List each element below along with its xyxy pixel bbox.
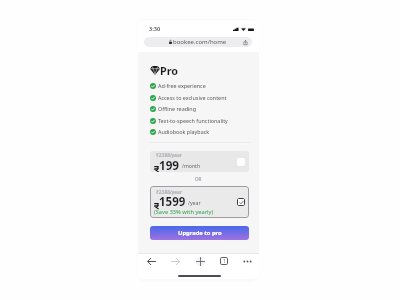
- staticText: Ad-free experience: [158, 82, 206, 89]
- staticText: 1: [223, 258, 226, 265]
- staticText: ₹2388/year: [156, 189, 182, 196]
- button[interactable]: Back: [145, 255, 157, 267]
- staticText: Text-to-speech functionality: [158, 117, 228, 124]
- button[interactable]: Upgrade to pro: [150, 226, 249, 240]
- button[interactable]: Forward: [169, 255, 181, 267]
- button[interactable]: bookee.com/home: [144, 37, 252, 47]
- staticText: Access to exclusive content: [158, 94, 227, 101]
- staticText: Audiobook playback: [158, 128, 210, 135]
- staticText: 3:30: [149, 25, 161, 33]
- staticText: ₹2388/year: [156, 152, 182, 159]
- button[interactable]: Selected plan: [237, 198, 245, 206]
- staticText: /month: [182, 162, 201, 169]
- staticText: bookee.com/home: [173, 38, 227, 46]
- button[interactable]: ₹2388/year: [150, 151, 249, 172]
- button[interactable]: Select plan: [237, 158, 245, 166]
- staticText: /year: [188, 199, 201, 206]
- staticText: Offline reading: [158, 105, 197, 112]
- button[interactable]: Tabs: [218, 255, 230, 267]
- staticText: OR: [195, 176, 202, 182]
- button[interactable]: Share: [242, 39, 248, 45]
- staticText: (Save 33% with yearly): [154, 208, 214, 216]
- button[interactable]: More options: [241, 255, 253, 267]
- staticText: Upgrade to pro: [178, 229, 222, 237]
- button[interactable]: ₹2388/year: [150, 186, 249, 218]
- button[interactable]: New tab: [194, 255, 206, 267]
- staticText: Pro: [160, 63, 179, 78]
- staticText: 1599: [159, 194, 186, 210]
- staticText: 199: [159, 157, 180, 172]
